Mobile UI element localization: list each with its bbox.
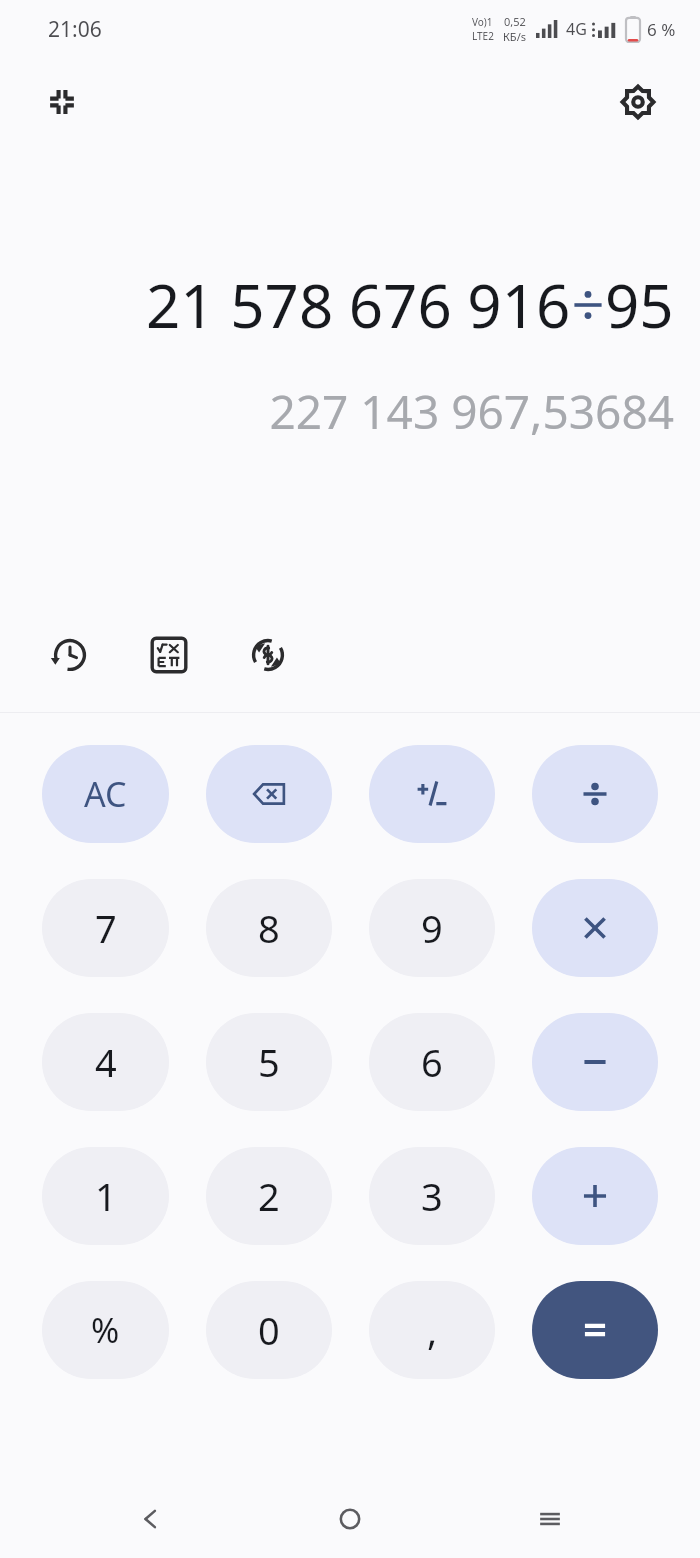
button[interactable]: 9: [369, 879, 495, 977]
staticText: 7: [95, 902, 117, 954]
staticText: ,: [427, 1304, 438, 1356]
staticText: 6: [421, 1036, 443, 1088]
button[interactable]: Scientific: [141, 627, 197, 683]
button[interactable]: 3: [369, 1147, 495, 1245]
staticText: 0,52: [504, 14, 526, 29]
button[interactable]: Back: [100, 1480, 200, 1558]
staticText: 21:06: [48, 15, 102, 44]
staticText: 1: [95, 1170, 117, 1222]
button[interactable]: 8: [206, 879, 332, 977]
staticText: 4: [95, 1036, 117, 1088]
staticText: 95: [605, 264, 674, 346]
button[interactable]: Settings: [602, 66, 674, 138]
staticText: 227 143 967,53684: [26, 380, 674, 443]
staticText: 3: [421, 1170, 443, 1222]
button[interactable]: AC: [42, 745, 169, 843]
button[interactable]: ,: [369, 1281, 495, 1379]
button[interactable]: Subtract: [532, 1013, 658, 1111]
button[interactable]: 6: [369, 1013, 495, 1111]
button[interactable]: %: [42, 1281, 169, 1379]
button[interactable]: 7: [42, 879, 169, 977]
button[interactable]: 0: [206, 1281, 332, 1379]
staticText: AC: [84, 771, 127, 817]
button[interactable]: Add: [532, 1147, 658, 1245]
button[interactable]: 4: [42, 1013, 169, 1111]
button[interactable]: Collapse: [26, 66, 98, 138]
staticText: 9: [421, 902, 443, 954]
staticText: 4G: [566, 18, 587, 40]
staticText: LTE2: [472, 29, 494, 43]
staticText: 21 578 676 916: [146, 264, 571, 346]
button[interactable]: History: [42, 627, 98, 683]
staticText: 8: [258, 902, 280, 954]
button[interactable]: Recents: [500, 1480, 600, 1558]
staticText: 0: [258, 1304, 280, 1356]
button[interactable]: Divide: [532, 745, 658, 843]
button[interactable]: 5: [206, 1013, 332, 1111]
staticText: КБ/s: [503, 29, 526, 44]
staticText: 5: [258, 1036, 280, 1088]
button[interactable]: Equals: [532, 1281, 658, 1379]
staticText: Vo)1: [472, 15, 493, 29]
staticText: 6 %: [647, 18, 676, 41]
button[interactable]: Home: [300, 1480, 400, 1558]
button[interactable]: 1: [42, 1147, 169, 1245]
button[interactable]: Toggle sign: [369, 745, 495, 843]
staticText: 2: [258, 1170, 280, 1222]
button[interactable]: 2: [206, 1147, 332, 1245]
button[interactable]: Currency converter: [240, 627, 296, 683]
staticText: %: [91, 1307, 120, 1353]
button[interactable]: Multiply: [532, 879, 658, 977]
button[interactable]: Backspace: [206, 745, 332, 843]
